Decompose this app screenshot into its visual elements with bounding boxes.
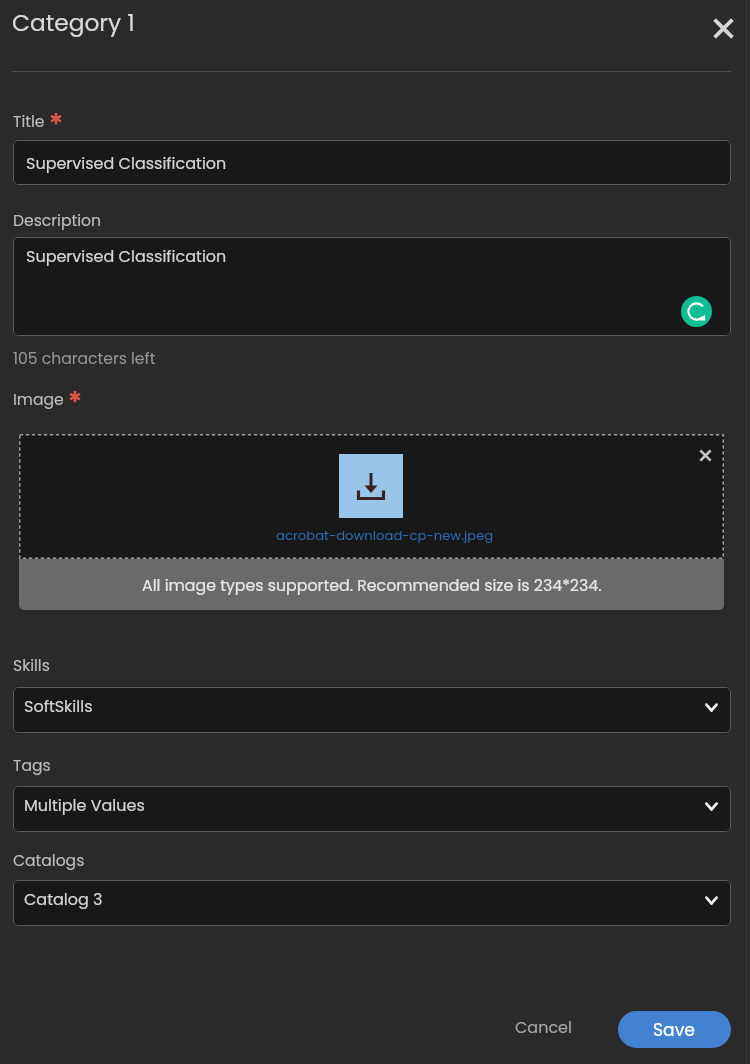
button[interactable]: Save [618,1011,731,1048]
button[interactable]: Multiple Values [13,786,731,832]
staticText: Save [653,1018,696,1042]
staticText: Description [13,210,101,232]
staticText: Catalogs [13,850,85,872]
staticText: Image [13,389,64,411]
button[interactable]: Regenerate description [681,296,712,327]
staticText: Multiple Values [24,794,145,816]
staticText: Skills [13,655,50,677]
button[interactable]: Cancel [493,1009,594,1045]
staticText: All image types supported. Recommended s… [142,574,602,596]
staticText: Title [13,111,45,133]
button[interactable]: Supervised Classification [13,237,731,336]
staticText: Supervised Classification [26,245,227,267]
staticText: Tags [13,755,51,777]
button[interactable]: SoftSkills [13,687,731,733]
staticText: Catalog 3 [24,888,103,910]
staticText: acrobat-download-cp-new.jpeg [276,526,494,544]
button[interactable]: Catalog 3 [13,880,731,926]
staticText: Supervised Classification [26,152,227,174]
button[interactable]: Supervised Classification [13,140,731,185]
button[interactable]: Remove image [694,444,716,466]
staticText: Category 1 [12,7,135,40]
staticText: SoftSkills [24,695,93,717]
staticText: 105 characters left [13,348,156,370]
button[interactable]: Close [703,8,743,48]
staticText: Cancel [515,1016,572,1038]
